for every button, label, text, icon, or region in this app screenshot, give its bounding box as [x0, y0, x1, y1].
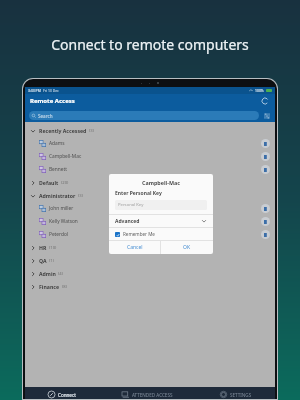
button[interactable]: Connect to machine [261, 139, 270, 148]
button[interactable]: Filter [262, 111, 271, 120]
staticText: Advanced [115, 218, 140, 225]
button[interactable]: Admin [25, 267, 275, 280]
button[interactable]: Campbell-Mac [25, 150, 275, 163]
button[interactable]: ATTENDED ACCESS [116, 388, 179, 399]
staticText: Adams [49, 140, 65, 147]
staticText: (3) [78, 193, 83, 199]
staticText: (4) [58, 271, 63, 277]
staticText: 3:33 PM [28, 88, 41, 93]
button[interactable]: Connect to machine [261, 152, 270, 161]
staticText: Kelly Watson [49, 218, 78, 225]
button[interactable]: Bennett [25, 163, 275, 176]
button[interactable]: Kelly Watson [25, 215, 275, 228]
staticText: Campbell-Mac [109, 179, 213, 186]
button[interactable]: Connect to machine [261, 165, 270, 174]
staticText: Remote Access [30, 97, 75, 105]
button[interactable]: Personal Key [115, 200, 207, 210]
button[interactable]: Peterdol [25, 228, 275, 241]
button[interactable]: Cancel [109, 241, 160, 254]
staticText: Enter Personal Key [115, 190, 162, 197]
button[interactable]: Finance [25, 280, 275, 293]
button[interactable]: Administrator [25, 189, 275, 202]
button[interactable]: Remember Me [109, 228, 213, 240]
staticText: Fri 13 Dec [43, 88, 59, 93]
button[interactable]: SETTINGS [214, 388, 258, 399]
staticText: QA [39, 257, 47, 264]
button[interactable]: Connect to machine [261, 204, 270, 213]
staticText: Peterdol [49, 231, 69, 238]
staticText: John miller [49, 205, 74, 212]
staticText: ATTENDED ACCESS [132, 392, 173, 398]
button[interactable]: Connect [42, 388, 82, 399]
staticText: HR [39, 244, 47, 251]
staticText: (1) [49, 258, 54, 264]
button[interactable]: OK [161, 241, 213, 254]
staticText: 100% [255, 88, 264, 93]
button[interactable]: John miller [25, 202, 275, 215]
staticText: Cancel [127, 244, 143, 251]
button[interactable]: Search [29, 111, 259, 120]
button[interactable]: QA [25, 254, 275, 267]
staticText: (8) [62, 284, 67, 290]
staticText: Connect to remote computers [0, 35, 300, 54]
staticText: SETTINGS [230, 392, 252, 398]
staticText: Admin [39, 270, 56, 277]
staticText: Search [38, 113, 53, 119]
staticText: OK [183, 244, 191, 251]
staticText: Default [39, 179, 59, 186]
button[interactable]: Default [25, 176, 275, 189]
button[interactable]: HR [25, 241, 275, 254]
staticText: Connect [58, 392, 76, 398]
button[interactable]: Advanced [109, 215, 213, 227]
staticText: Recently Accessed [39, 127, 87, 134]
staticText: (10) [49, 245, 57, 251]
button[interactable]: Connect to machine [261, 230, 270, 239]
staticText: (20) [61, 180, 69, 186]
staticText: (3) [89, 128, 94, 134]
staticText: Personal Key [118, 202, 144, 208]
staticText: Administrator [39, 192, 76, 199]
button[interactable]: Refresh [260, 96, 270, 106]
button[interactable]: Connect to machine [261, 217, 270, 226]
staticText: Bennett [49, 166, 67, 173]
staticText: Finance [39, 283, 60, 290]
button[interactable]: Adams [25, 137, 275, 150]
button[interactable]: Recently Accessed [25, 124, 275, 137]
staticText: Remember Me [123, 231, 155, 237]
staticText: Campbell-Mac [49, 153, 82, 160]
